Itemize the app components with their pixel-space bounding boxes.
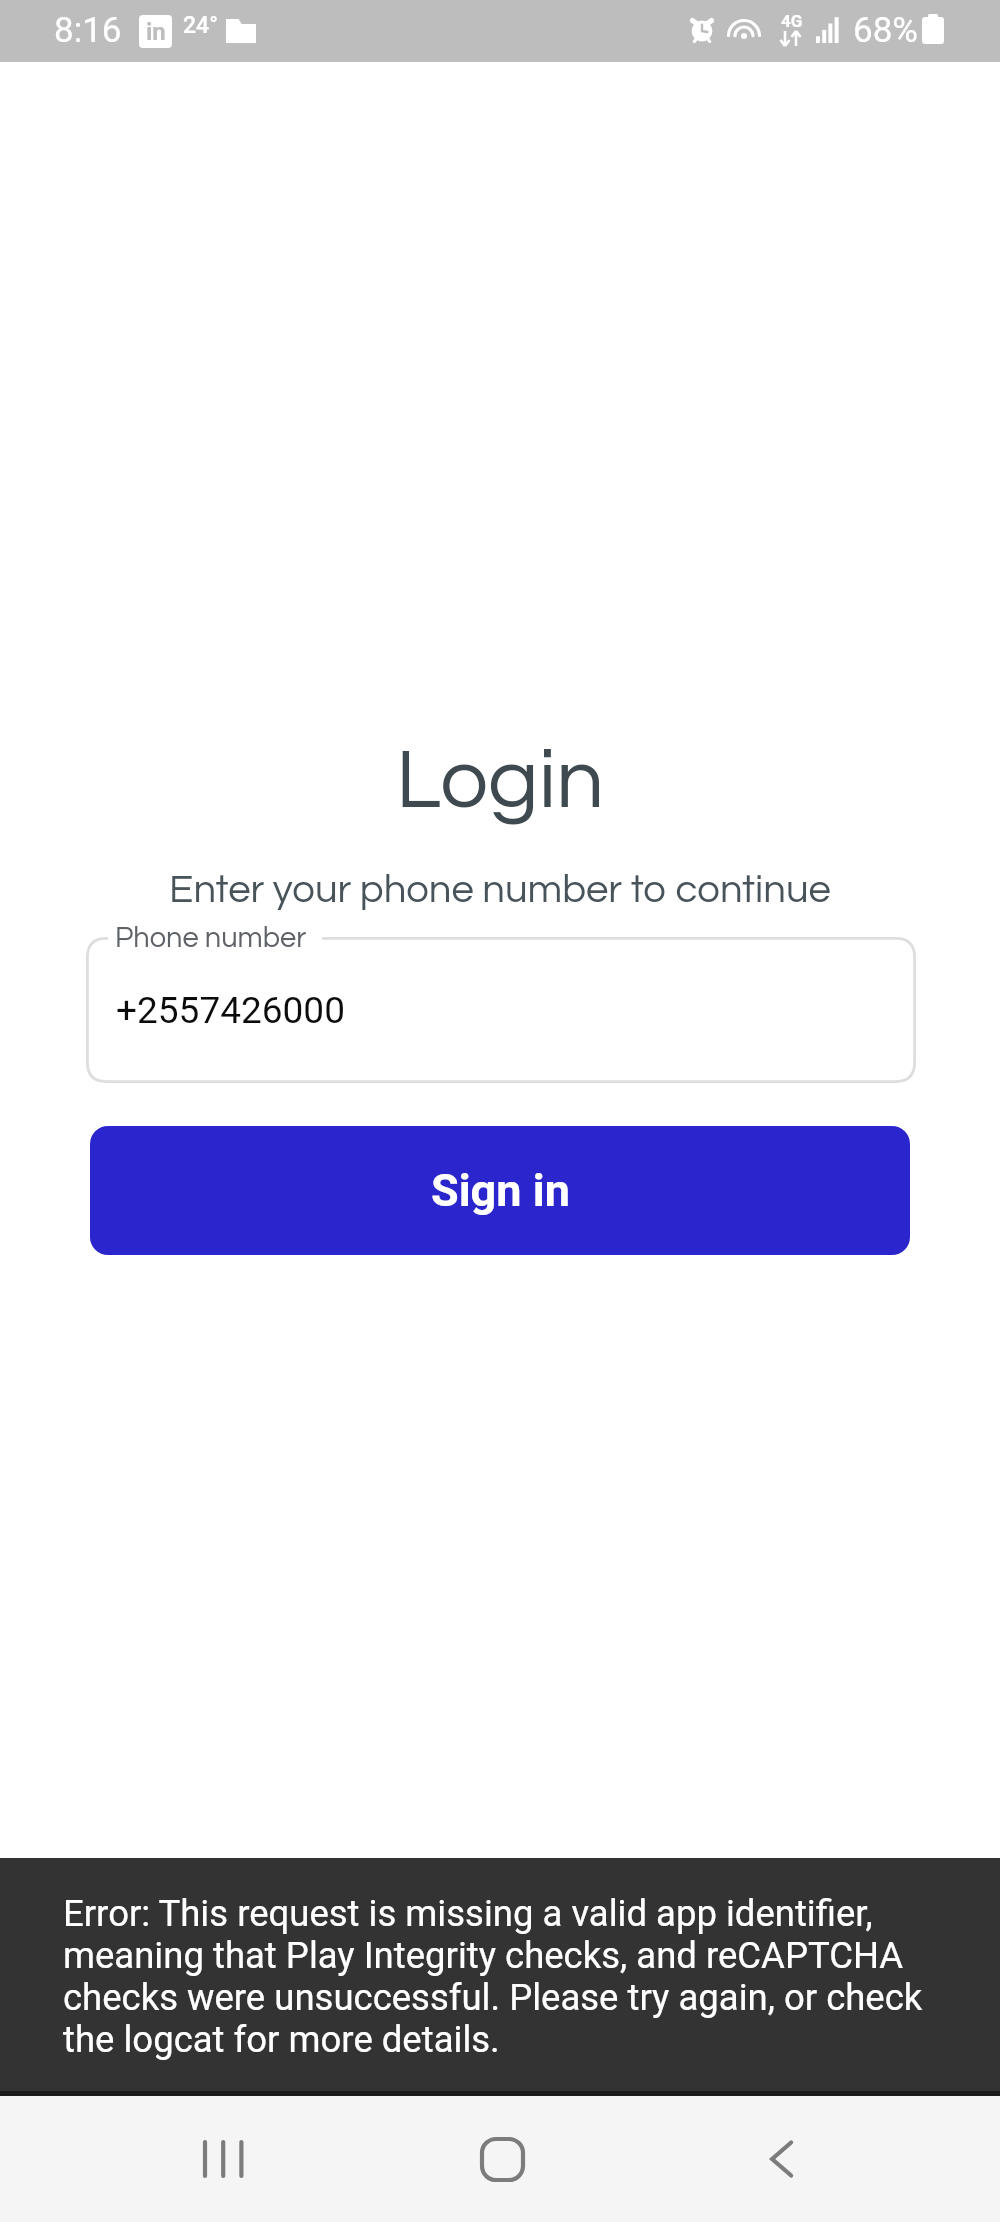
staticText: Sign in <box>431 1164 570 1217</box>
staticText: +2557426000 <box>116 989 345 1032</box>
staticText: 4G <box>781 11 803 31</box>
button[interactable]: Back <box>722 2096 842 2222</box>
staticText: 8:16 <box>54 10 122 51</box>
staticText: Login <box>0 737 1000 825</box>
button[interactable]: Sign in <box>90 1126 910 1255</box>
staticText: Error: This request is missing a valid a… <box>63 1892 943 2061</box>
button[interactable]: Recent apps <box>162 2096 282 2222</box>
button[interactable]: Home <box>442 2096 562 2222</box>
staticText: in <box>146 18 166 46</box>
staticText: Phone number <box>115 923 307 953</box>
staticText: 24° <box>183 12 218 39</box>
button[interactable] <box>86 937 916 1083</box>
staticText: Enter your phone number to continue <box>0 869 1000 910</box>
staticText: 68% <box>853 10 918 51</box>
